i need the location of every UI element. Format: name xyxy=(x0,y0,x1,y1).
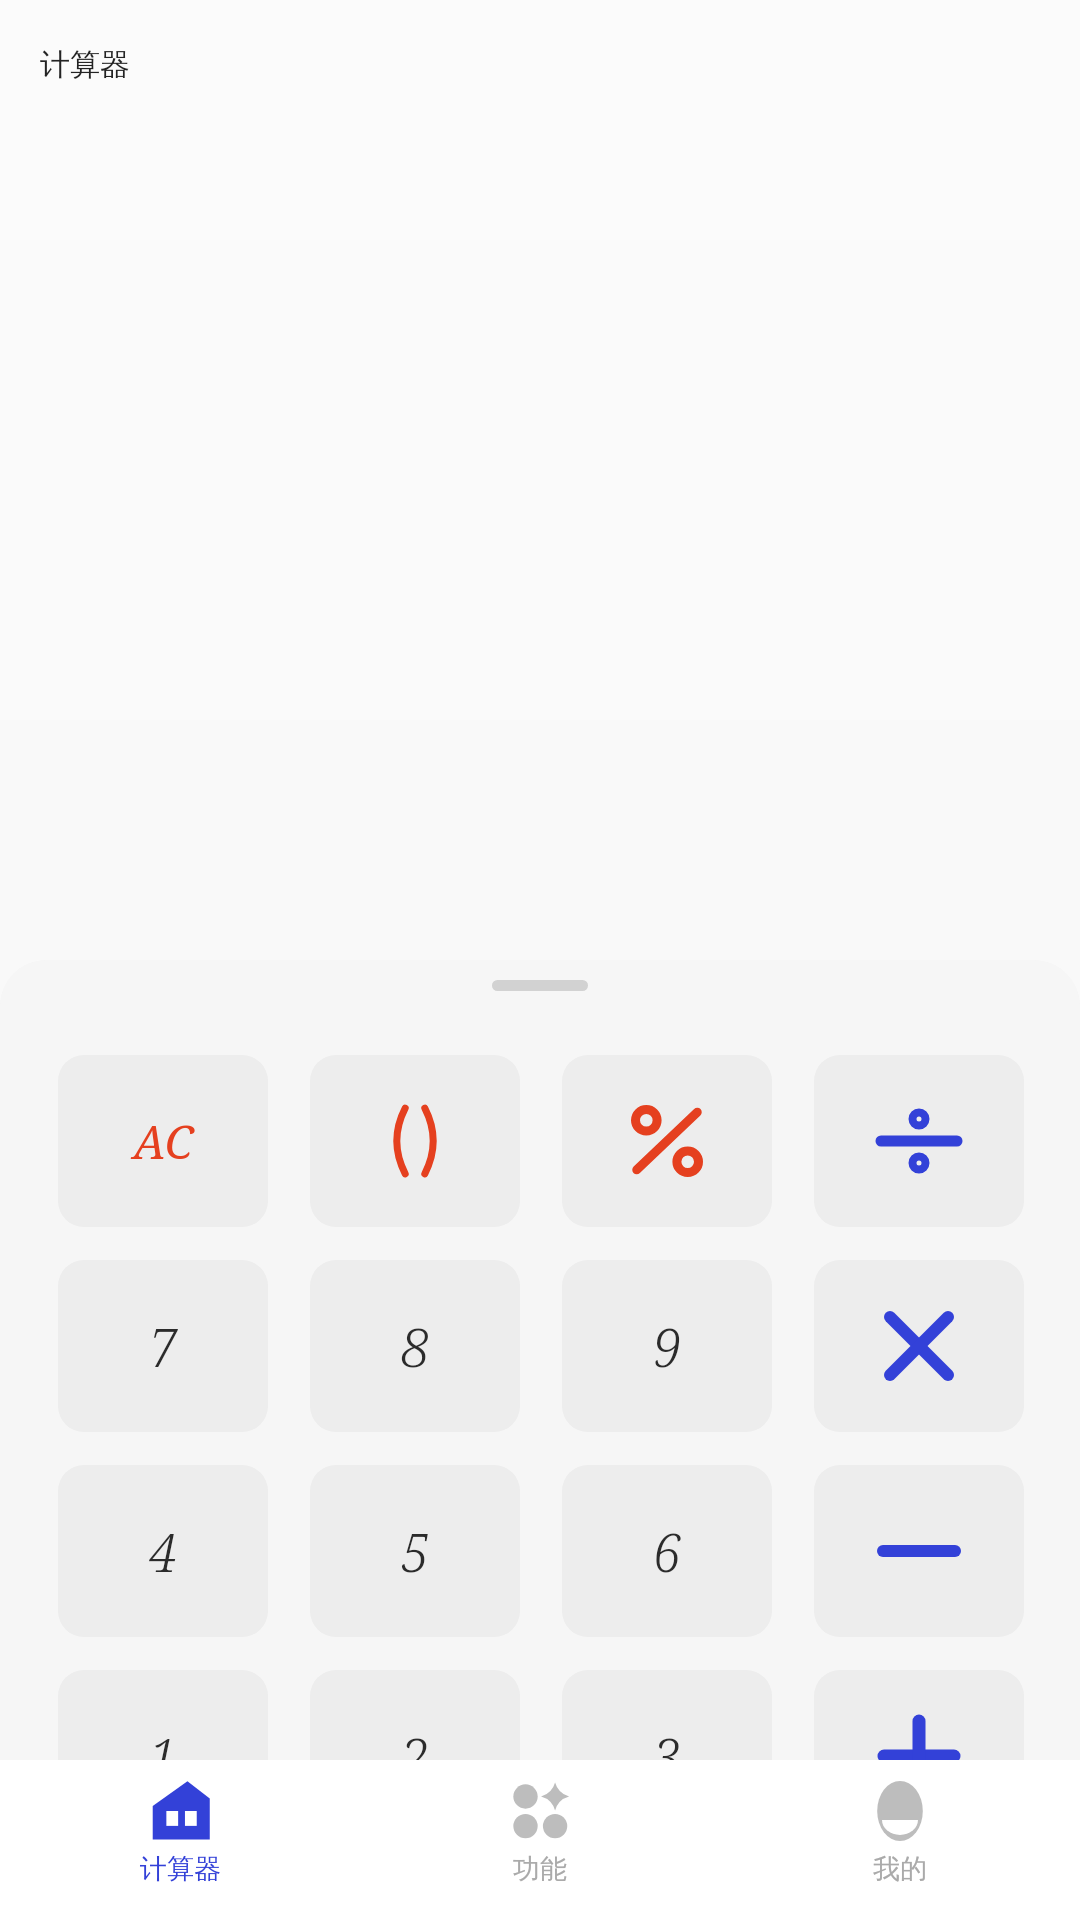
button[interactable]: 我的 xyxy=(720,1760,1080,1920)
button[interactable]: 5 xyxy=(310,1465,520,1637)
staticText: 8 xyxy=(401,1311,429,1382)
button[interactable]: Multiply xyxy=(814,1260,1024,1432)
button[interactable]: 4 xyxy=(58,1465,268,1637)
staticText: 4 xyxy=(149,1516,177,1587)
button[interactable]: Parentheses xyxy=(310,1055,520,1227)
staticText: 2 xyxy=(401,1721,429,1760)
staticText: 6 xyxy=(653,1516,681,1587)
button[interactable]: 1 xyxy=(58,1670,268,1760)
staticText: 3 xyxy=(653,1721,681,1760)
button[interactable]: 6 xyxy=(562,1465,772,1637)
button[interactable]: Minus xyxy=(814,1465,1024,1637)
button[interactable]: 2 xyxy=(310,1670,520,1760)
button[interactable]: 8 xyxy=(310,1260,520,1432)
staticText: 7 xyxy=(149,1311,177,1382)
staticText: 计算器 xyxy=(40,46,130,84)
staticText: 9 xyxy=(653,1311,681,1382)
staticText: 我的 xyxy=(873,1852,927,1886)
button[interactable]: 7 xyxy=(58,1260,268,1432)
staticText: 1 xyxy=(149,1721,177,1760)
button[interactable]: 9 xyxy=(562,1260,772,1432)
button[interactable]: 功能 xyxy=(360,1760,720,1920)
button[interactable]: AC xyxy=(58,1055,268,1227)
button[interactable]: 计算器 xyxy=(0,1760,360,1920)
staticText: AC xyxy=(133,1110,194,1173)
button[interactable]: Plus xyxy=(814,1670,1024,1760)
button[interactable]: Divide xyxy=(814,1055,1024,1227)
button[interactable]: Percent xyxy=(562,1055,772,1227)
staticText: 功能 xyxy=(513,1852,567,1886)
button[interactable]: 3 xyxy=(562,1670,772,1760)
staticText: 5 xyxy=(401,1516,429,1587)
staticText: 计算器 xyxy=(140,1852,221,1886)
